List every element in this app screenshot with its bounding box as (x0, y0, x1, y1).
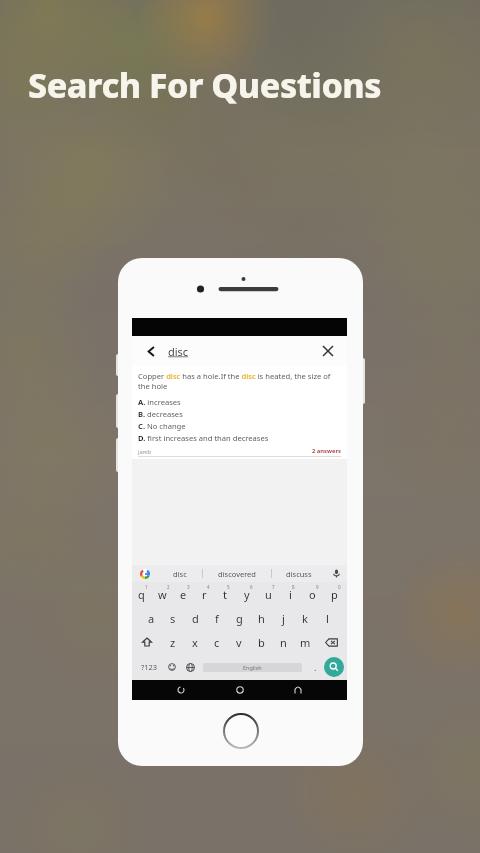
button[interactable]: s (162, 606, 184, 630)
staticText: n (280, 635, 287, 650)
staticText: 2 (167, 584, 170, 590)
button[interactable]: Copper disc has a hole.If the disc is he… (132, 366, 347, 459)
staticText: x (192, 635, 198, 650)
staticText: 3 (187, 584, 190, 590)
staticText: g (236, 611, 243, 626)
staticText: e (180, 587, 187, 602)
staticText: u (265, 587, 272, 602)
staticText: 2 answers (312, 447, 341, 455)
button[interactable]: r (195, 582, 216, 606)
button[interactable]: Shift (132, 630, 162, 654)
staticText: m (300, 635, 311, 650)
staticText: t (223, 587, 227, 602)
staticText: C. No change (138, 421, 186, 431)
staticText: z (170, 635, 176, 650)
staticText: 1 (145, 584, 148, 590)
staticText: s (170, 611, 176, 626)
staticText: 4 (207, 584, 210, 590)
button[interactable]: f (206, 606, 228, 630)
staticText: 9 (316, 584, 319, 590)
button[interactable]: English (203, 663, 302, 672)
staticText: l (326, 611, 329, 626)
staticText: i (289, 587, 292, 602)
staticText: ?123 (141, 662, 158, 672)
staticText: d (192, 611, 199, 626)
button[interactable]: ?123 (135, 654, 163, 680)
staticText: k (302, 611, 308, 626)
staticText: y (244, 587, 250, 602)
button[interactable]: Back (171, 680, 191, 700)
button[interactable]: n (272, 630, 294, 654)
staticText: f (215, 611, 219, 626)
staticText: q (138, 587, 145, 602)
button[interactable]: k (294, 606, 316, 630)
staticText: h (258, 611, 265, 626)
button[interactable]: Google search (132, 565, 158, 582)
staticText: jamb (138, 448, 152, 455)
staticText: b (258, 635, 265, 650)
button[interactable]: h (250, 606, 272, 630)
staticText: Search For Questions (28, 62, 382, 108)
staticText: 6 (250, 584, 253, 590)
button[interactable]: . (306, 654, 324, 680)
button[interactable]: b (250, 630, 272, 654)
button[interactable]: e (174, 582, 195, 606)
button[interactable]: z (162, 630, 184, 654)
button[interactable]: w (153, 582, 174, 606)
button[interactable]: Home (230, 680, 250, 700)
button[interactable]: p (325, 582, 347, 606)
button[interactable]: Emoji (163, 654, 181, 680)
button[interactable]: i (281, 582, 303, 606)
staticText: w (158, 587, 167, 602)
staticText: Copper disc has a hole.If the disc is he… (138, 371, 341, 391)
staticText: c (214, 635, 220, 650)
button[interactable]: c (206, 630, 228, 654)
staticText: v (236, 635, 242, 650)
staticText: B. decreases (138, 409, 183, 419)
staticText: j (282, 611, 285, 626)
button[interactable]: l (316, 606, 338, 630)
staticText: p (331, 587, 338, 602)
button[interactable]: a (141, 606, 162, 630)
button[interactable]: Voice input (325, 565, 347, 582)
staticText: disc (173, 569, 187, 579)
staticText: discovered (218, 569, 256, 579)
button[interactable]: discovered (203, 565, 271, 582)
staticText: 7 (272, 584, 275, 590)
staticText: r (202, 587, 207, 602)
button[interactable]: Backspace (316, 630, 347, 654)
staticText: disc (168, 344, 319, 359)
button[interactable]: disc (158, 565, 202, 582)
button[interactable]: g (228, 606, 250, 630)
staticText: a (148, 611, 155, 626)
button[interactable]: q (132, 582, 153, 606)
staticText: discuss (286, 569, 312, 579)
button[interactable]: y (237, 582, 259, 606)
button[interactable]: o (303, 582, 325, 606)
staticText: 8 (292, 584, 295, 590)
button[interactable]: discuss (272, 565, 325, 582)
button[interactable]: j (272, 606, 294, 630)
button[interactable]: Clear search (319, 342, 337, 360)
button[interactable]: d (184, 606, 206, 630)
staticText: 0 (338, 584, 341, 590)
staticText: o (309, 587, 316, 602)
button[interactable]: Search (324, 657, 344, 677)
staticText: D. first increases and than decreases (138, 433, 269, 443)
button[interactable]: v (228, 630, 250, 654)
button[interactable]: t (216, 582, 237, 606)
button[interactable]: Change language (181, 654, 199, 680)
staticText: 5 (227, 584, 230, 590)
button[interactable]: m (294, 630, 316, 654)
button[interactable]: x (184, 630, 206, 654)
button[interactable]: u (259, 582, 281, 606)
button[interactable]: Recent apps (288, 680, 308, 700)
button[interactable]: Back (142, 342, 160, 360)
staticText: . (314, 661, 317, 673)
staticText: A. increases (138, 397, 181, 407)
staticText: English (243, 664, 262, 671)
